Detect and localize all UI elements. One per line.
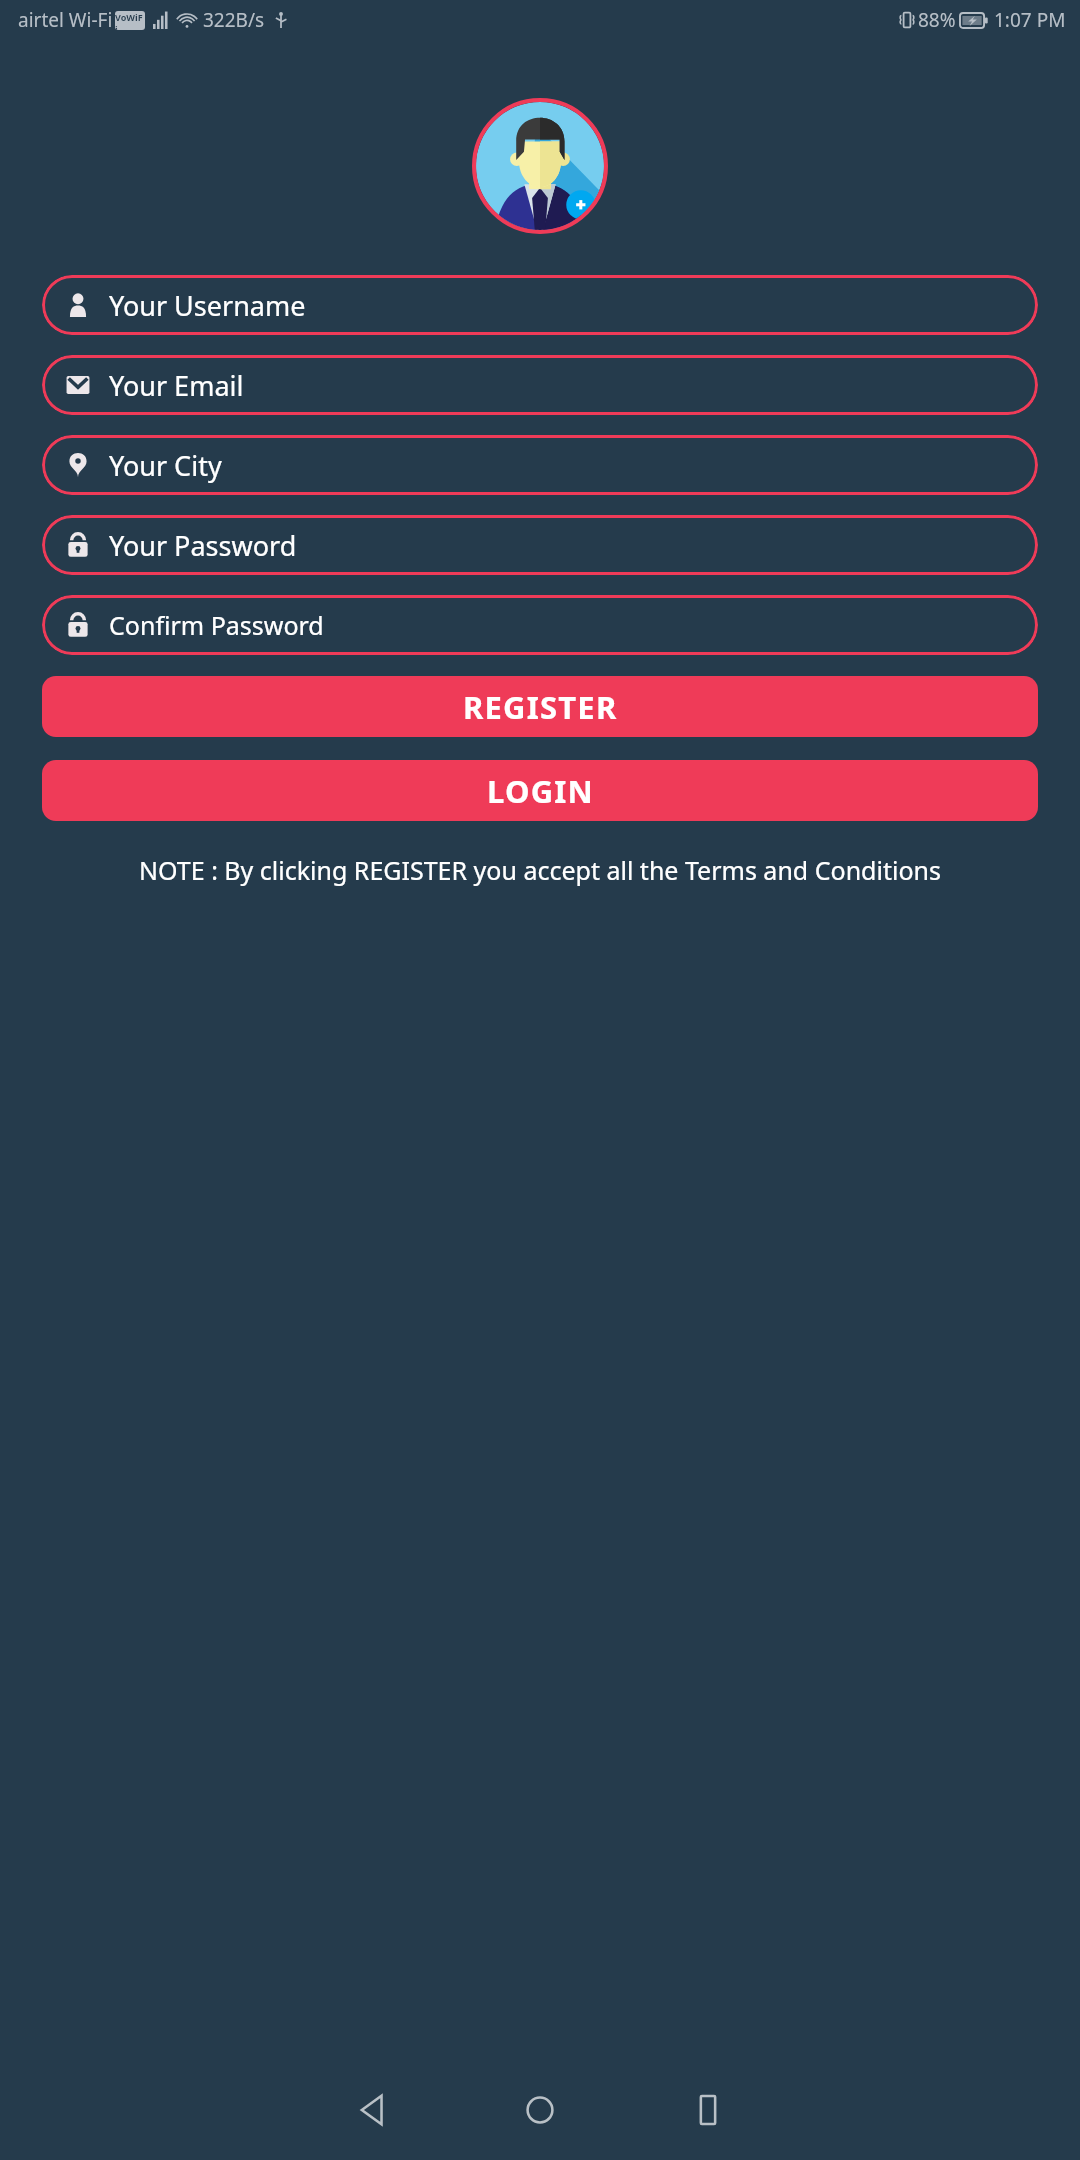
button[interactable]: Home [508,2078,572,2142]
staticText: Your City [109,447,222,484]
staticText: Your Password [109,527,297,564]
button[interactable]: Change profile photo [472,98,608,234]
staticText: Your Email [109,367,244,404]
button[interactable]: Confirm Password [42,595,1038,655]
button[interactable]: Recent apps [676,2078,740,2142]
staticText: airtel Wi-Fi [18,7,113,33]
button[interactable]: Your Password [42,515,1038,575]
staticText: LOGIN [487,770,594,812]
staticText: NOTE : By clicking REGISTER you accept a… [32,853,1048,887]
staticText: 322B/s [203,7,265,33]
button[interactable]: LOGIN [42,760,1038,821]
button[interactable]: Back [340,2078,404,2142]
staticText: REGISTER [463,686,618,728]
button[interactable]: Your Username [42,275,1038,335]
staticText: Your Username [109,287,306,324]
staticText: 88% [918,7,956,33]
staticText: 1:07 PM [994,7,1066,33]
button[interactable]: REGISTER [42,676,1038,737]
staticText: Confirm Password [109,608,324,642]
staticText: VoWiFi [115,11,145,30]
button[interactable]: Your City [42,435,1038,495]
button[interactable]: Your Email [42,355,1038,415]
